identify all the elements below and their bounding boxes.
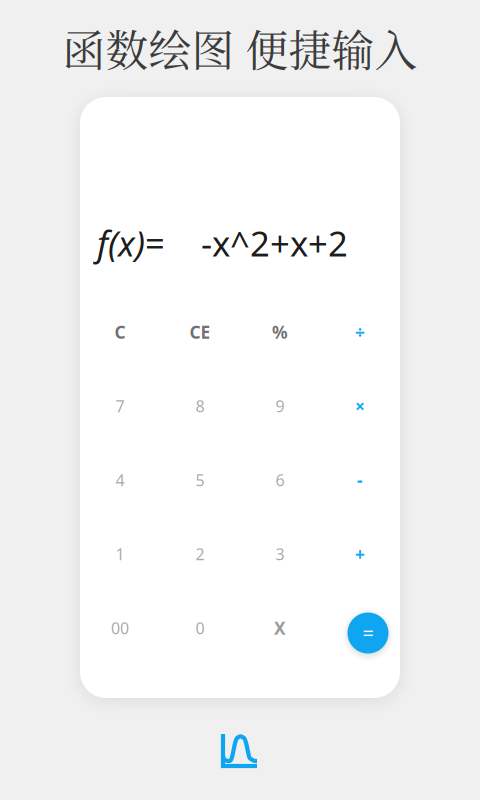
staticText: 6 bbox=[275, 469, 284, 491]
button[interactable]: 3 bbox=[240, 517, 320, 591]
button[interactable]: 7 bbox=[80, 369, 160, 443]
button[interactable]: 8 bbox=[160, 369, 240, 443]
button[interactable]: 2 bbox=[160, 517, 240, 591]
button[interactable]: X bbox=[240, 591, 320, 665]
button[interactable]: 5 bbox=[160, 443, 240, 517]
staticText: 0 bbox=[195, 617, 204, 639]
button[interactable]: 0 bbox=[160, 591, 240, 665]
staticText: 3 bbox=[275, 543, 284, 565]
button[interactable]: Equals bbox=[320, 591, 400, 665]
button[interactable]: 9 bbox=[240, 369, 320, 443]
staticText: + bbox=[355, 542, 365, 565]
button[interactable]: % bbox=[240, 295, 320, 369]
button[interactable]: 6 bbox=[240, 443, 320, 517]
staticText: - bbox=[357, 468, 363, 491]
staticText: C bbox=[114, 320, 125, 343]
button[interactable] bbox=[214, 729, 266, 773]
button[interactable]: 1 bbox=[80, 517, 160, 591]
staticText: 5 bbox=[195, 469, 204, 491]
staticText: × bbox=[355, 394, 365, 417]
staticText: X bbox=[274, 616, 286, 639]
button[interactable]: CE bbox=[160, 295, 240, 369]
staticText: ÷ bbox=[355, 320, 365, 343]
staticText: 4 bbox=[115, 469, 124, 491]
staticText: 8 bbox=[195, 395, 204, 417]
staticText: 00 bbox=[111, 617, 129, 639]
button[interactable]: × bbox=[320, 369, 400, 443]
button[interactable]: - bbox=[320, 443, 400, 517]
staticText: % bbox=[272, 320, 288, 343]
staticText: -x^2+x+2 bbox=[201, 220, 348, 266]
button[interactable]: 4 bbox=[80, 443, 160, 517]
staticText: = bbox=[362, 620, 373, 646]
staticText: = bbox=[145, 220, 165, 266]
staticText: 2 bbox=[195, 543, 204, 565]
staticText: f(x) bbox=[97, 220, 145, 266]
button[interactable]: C bbox=[80, 295, 160, 369]
staticText: 9 bbox=[275, 395, 284, 417]
staticText: 1 bbox=[115, 543, 124, 565]
button[interactable]: 00 bbox=[80, 591, 160, 665]
staticText: 函数绘图 便捷输入 bbox=[62, 17, 417, 79]
staticText: 7 bbox=[115, 395, 124, 417]
button[interactable]: ÷ bbox=[320, 295, 400, 369]
staticText: CE bbox=[189, 320, 210, 343]
button[interactable]: + bbox=[320, 517, 400, 591]
